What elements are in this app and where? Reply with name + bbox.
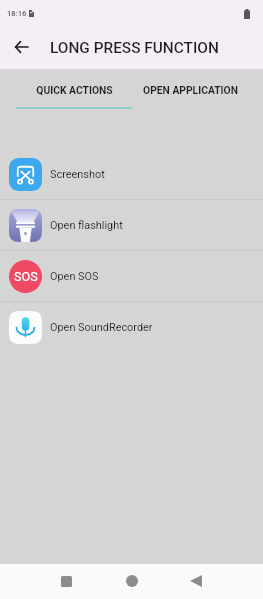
button[interactable]: QUICK ACTIONS [16,69,132,111]
button[interactable]: Screenshot [0,149,263,199]
button[interactable]: Back [7,33,35,61]
button[interactable]: Recents [50,565,82,597]
button[interactable]: Back [180,565,212,597]
button[interactable]: SOS [0,251,263,301]
staticText: SOS [14,269,38,284]
staticText: Screenshot [50,168,105,181]
staticText: Open SoundRecorder [50,321,153,334]
staticText: OPEN APPLICATION [143,84,238,96]
button[interactable]: Home [116,565,148,597]
staticText: Open flashlight [50,219,123,232]
staticText: 18:16 [7,9,27,18]
staticText: QUICK ACTIONS [36,84,113,96]
staticText: LONG PRESS FUNCTION [50,39,219,57]
staticText: Open SOS [50,270,99,283]
button[interactable]: OPEN APPLICATION [132,69,248,111]
button[interactable]: Open flashlight [0,200,263,250]
button[interactable]: Open SoundRecorder [0,302,263,352]
